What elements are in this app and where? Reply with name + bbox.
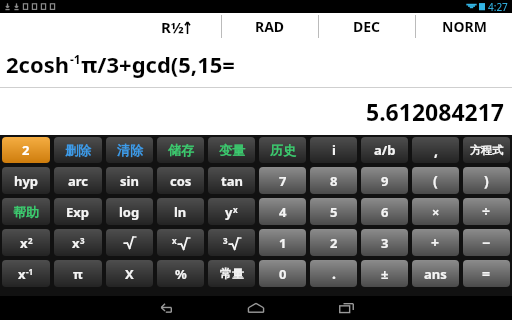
button[interactable]: 变量 [208, 137, 255, 163]
button[interactable]: π [54, 260, 102, 287]
staticText: 3 [381, 234, 389, 252]
button[interactable]: 4 [259, 198, 306, 225]
button[interactable]: × [412, 198, 459, 225]
button[interactable]: DEC [319, 13, 415, 40]
staticText: X [125, 265, 134, 283]
button[interactable]: 3 [361, 229, 408, 256]
button[interactable]: 0 [259, 260, 306, 287]
button[interactable]: sin [106, 167, 153, 194]
button[interactable]: = [463, 260, 510, 287]
button[interactable]: 帮助 [2, 198, 50, 225]
staticText: ln [174, 203, 187, 221]
button[interactable]: log [106, 198, 153, 225]
button[interactable]: ÷ [463, 198, 510, 225]
button[interactable]: 方程式 [463, 137, 510, 163]
staticText: × [432, 203, 440, 221]
staticText: 删除 [65, 142, 91, 158]
staticText: a/b [374, 141, 396, 159]
button[interactable]: ± [361, 260, 408, 287]
button[interactable]: − [463, 229, 510, 256]
staticText: . [332, 264, 336, 283]
staticText: 储存 [168, 142, 194, 158]
button[interactable]: arc [54, 167, 102, 194]
staticText: 5.612084217 [366, 96, 505, 127]
staticText: x [20, 234, 28, 252]
button[interactable]: ) [463, 167, 510, 194]
staticText: 4 [279, 203, 287, 221]
button[interactable]: Back [135, 296, 197, 320]
button[interactable]: 7 [259, 167, 306, 194]
staticText: cos [170, 172, 192, 190]
button[interactable]: , [412, 137, 459, 163]
button[interactable]: ans [412, 260, 459, 287]
button[interactable]: 9 [361, 167, 408, 194]
staticText: − [482, 233, 491, 252]
button[interactable]: i [310, 137, 357, 163]
staticText: i [332, 141, 336, 159]
button[interactable]: % [157, 260, 204, 287]
button[interactable]: . [310, 260, 357, 287]
button[interactable]: ln [157, 198, 204, 225]
staticText: x [72, 234, 80, 252]
staticText: 2 [28, 235, 33, 246]
staticText: , [434, 141, 438, 160]
staticText: π [73, 265, 83, 283]
staticText: NORM [442, 17, 487, 36]
button[interactable]: R½ [0, 13, 221, 40]
button[interactable]: 常量 [208, 260, 255, 287]
button[interactable]: 8 [310, 167, 357, 194]
button[interactable]: x [157, 229, 204, 256]
button[interactable]: 清除 [106, 137, 153, 163]
staticText: ( [433, 171, 438, 190]
staticText: -1 [26, 266, 34, 277]
button[interactable]: 1 [259, 229, 306, 256]
button[interactable]: cos [157, 167, 204, 194]
staticText: 1 [279, 234, 287, 252]
staticText: log [119, 203, 140, 221]
button[interactable]: a/b [361, 137, 408, 163]
button[interactable] [106, 229, 153, 256]
button[interactable]: 历史 [259, 137, 306, 163]
staticText: DEC [353, 17, 381, 36]
staticText: y [225, 203, 233, 221]
staticText: 8 [330, 172, 338, 190]
button[interactable]: x [2, 260, 50, 287]
button[interactable]: 5 [310, 198, 357, 225]
staticText: 清除 [117, 142, 143, 158]
button[interactable]: 3 [208, 229, 255, 256]
button[interactable]: Recent apps [315, 296, 377, 320]
staticText: R½ [161, 17, 184, 37]
button[interactable]: X [106, 260, 153, 287]
button[interactable]: 2 [2, 137, 50, 163]
staticText: hyp [14, 172, 39, 190]
staticText: arc [68, 172, 89, 190]
button[interactable]: 2 [310, 229, 357, 256]
staticText: 9 [381, 172, 389, 190]
button[interactable]: RAD [222, 13, 318, 40]
staticText: -1 [70, 51, 81, 67]
staticText: 常量 [220, 266, 244, 281]
staticText: RAD [255, 17, 285, 36]
button[interactable]: Home [225, 296, 287, 320]
staticText: ÷ [482, 202, 491, 221]
button[interactable]: 6 [361, 198, 408, 225]
staticText: 6 [381, 203, 389, 221]
button[interactable]: 储存 [157, 137, 204, 163]
button[interactable]: y [208, 198, 255, 225]
staticText: π/3+gcd(5,15= [81, 49, 235, 79]
staticText: 历史 [270, 142, 296, 158]
button[interactable]: x [2, 229, 50, 256]
button[interactable]: Exp [54, 198, 102, 225]
button[interactable]: 删除 [54, 137, 102, 163]
staticText: sin [120, 172, 139, 190]
button[interactable]: NORM [416, 13, 512, 40]
button[interactable]: tan [208, 167, 255, 194]
button[interactable]: ( [412, 167, 459, 194]
button[interactable]: + [412, 229, 459, 256]
staticText: 方程式 [470, 143, 503, 157]
staticText: Exp [66, 203, 90, 221]
button[interactable]: hyp [2, 167, 50, 194]
button[interactable]: x [54, 229, 102, 256]
staticText: 2 [330, 234, 338, 252]
staticText: 2 [22, 141, 30, 159]
